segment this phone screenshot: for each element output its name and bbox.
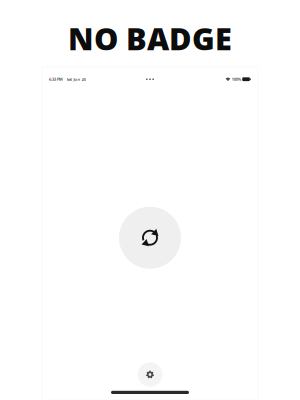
staticText: 6:33 PM	[49, 77, 63, 82]
staticText: Sat Jun 24	[66, 77, 85, 82]
button[interactable]: Settings	[138, 362, 162, 387]
staticText: 100%	[232, 77, 241, 82]
button[interactable]: Refresh	[119, 207, 181, 269]
staticText: NO BADGE	[68, 18, 232, 59]
